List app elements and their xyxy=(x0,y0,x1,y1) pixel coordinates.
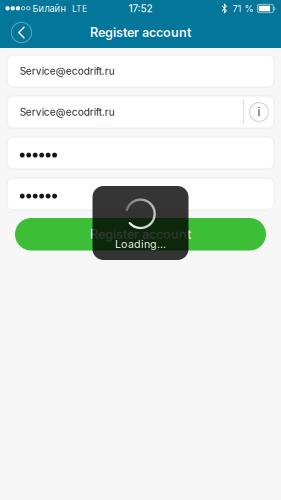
staticText: Loading... xyxy=(115,238,166,250)
staticText: Билайн xyxy=(32,3,66,14)
staticText: Service@ecodrift.ru xyxy=(20,106,115,118)
staticText: LTE xyxy=(72,3,87,14)
staticText: Register account xyxy=(90,25,191,40)
staticText: i xyxy=(257,105,260,119)
button[interactable]: Info xyxy=(244,96,274,128)
staticText: 71 % xyxy=(232,3,253,14)
staticText: Service@ecodrift.ru xyxy=(20,65,115,77)
button[interactable]: Back xyxy=(0,17,43,48)
staticText: 17:52 xyxy=(128,2,152,15)
staticText: Register account xyxy=(90,227,191,242)
button[interactable]: Register account xyxy=(15,218,266,250)
